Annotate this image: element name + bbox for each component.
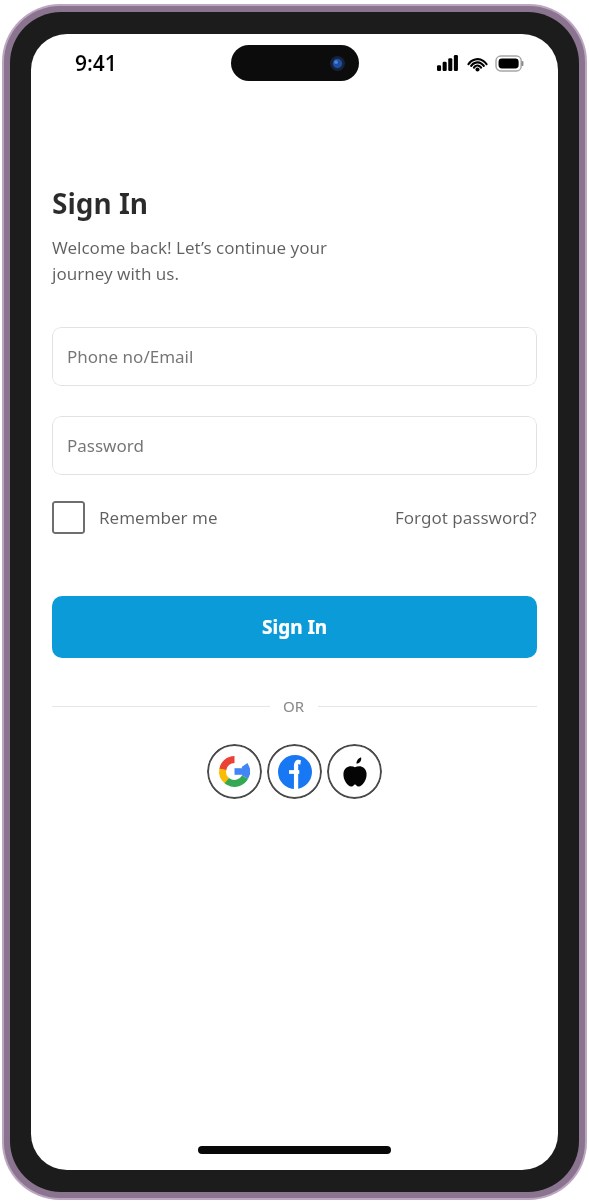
button[interactable]: Sign In (52, 596, 537, 658)
button[interactable]: Remember me (52, 501, 218, 534)
staticText: Remember me (99, 506, 218, 529)
staticText: Sign In (52, 184, 149, 222)
button[interactable]: Sign in with Google (207, 744, 262, 799)
staticText: 9:41 (75, 49, 117, 78)
staticText: Password (67, 434, 144, 457)
staticText: OR (283, 696, 305, 716)
staticText: Phone no/Email (67, 345, 194, 368)
button[interactable]: Phone no/Email (52, 327, 537, 386)
staticText: Sign In (262, 614, 328, 640)
staticText: Welcome back! Let’s continue your journe… (52, 236, 327, 285)
button[interactable]: Sign in with Facebook (267, 744, 322, 799)
button[interactable]: Forgot password? (395, 506, 537, 529)
button[interactable]: Password (52, 416, 537, 475)
button[interactable]: Sign in with Apple (327, 744, 382, 799)
